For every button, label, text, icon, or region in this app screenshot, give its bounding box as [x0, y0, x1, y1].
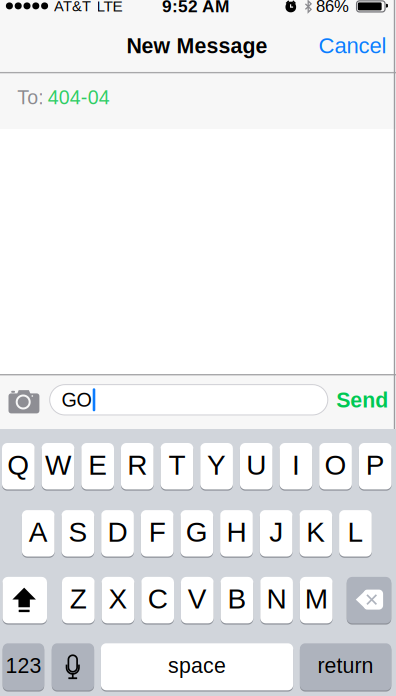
staticText: AT&T	[54, 0, 91, 14]
button[interactable]: F	[141, 509, 173, 557]
staticText: Cancel	[318, 33, 386, 58]
button[interactable]: P	[359, 442, 391, 490]
staticText: Y	[207, 449, 226, 481]
button[interactable]: T	[161, 442, 193, 490]
button[interactable]: Z	[62, 576, 95, 624]
staticText: X	[108, 583, 127, 615]
staticText: F	[149, 516, 166, 548]
button[interactable]: return	[300, 643, 391, 691]
staticText: W	[45, 449, 71, 481]
staticText: H	[226, 516, 246, 548]
button[interactable]: B	[221, 576, 253, 624]
staticText: Q	[7, 449, 29, 481]
staticText: To:	[17, 87, 43, 108]
button[interactable]: W	[42, 442, 74, 490]
staticText: E	[88, 449, 107, 481]
staticText: K	[306, 516, 325, 548]
staticText: C	[148, 583, 168, 615]
staticText: space	[168, 654, 226, 677]
button[interactable]: J	[260, 509, 292, 557]
button[interactable]: K	[299, 509, 332, 557]
staticText: P	[366, 449, 385, 481]
staticText: S	[68, 516, 87, 548]
staticText: Send	[336, 388, 388, 412]
staticText: L	[347, 516, 363, 548]
staticText: D	[107, 516, 127, 548]
staticText: J	[269, 516, 283, 548]
button[interactable]: A	[22, 509, 55, 557]
button[interactable]: Cancel	[306, 23, 396, 67]
staticText: 9:52 AM	[162, 0, 229, 16]
staticText: LTE	[96, 0, 122, 15]
staticText: N	[267, 583, 287, 615]
staticText: New Message	[126, 34, 267, 58]
button[interactable]: D	[101, 509, 134, 557]
button[interactable]: Delete	[347, 576, 391, 624]
staticText: I	[292, 449, 300, 481]
button[interactable]: O	[319, 442, 352, 490]
button[interactable]: Y	[200, 442, 233, 490]
button[interactable]: G	[180, 509, 213, 557]
staticText: 86%	[316, 0, 349, 16]
button[interactable]: X	[102, 576, 134, 624]
button[interactable]: H	[220, 509, 253, 557]
staticText: U	[246, 449, 266, 481]
button[interactable]: U	[240, 442, 273, 490]
staticText: Z	[70, 583, 87, 615]
button[interactable]: Send	[329, 379, 395, 421]
staticText: B	[227, 583, 246, 615]
staticText: 123	[5, 654, 41, 677]
staticText: R	[127, 449, 147, 481]
button[interactable]: I	[280, 442, 312, 490]
button[interactable]: space	[101, 643, 293, 691]
button[interactable]: E	[81, 442, 114, 490]
button[interactable]: V	[181, 576, 214, 624]
button[interactable]: M	[300, 576, 333, 624]
staticText: G	[186, 516, 208, 548]
staticText: return	[318, 654, 374, 677]
button[interactable]: R	[121, 442, 154, 490]
button[interactable]: 123	[3, 643, 44, 691]
button[interactable]: N	[260, 576, 293, 624]
button[interactable]: L	[339, 509, 372, 557]
button[interactable]: C	[141, 576, 174, 624]
button[interactable]: Q	[2, 442, 35, 490]
staticText: T	[168, 449, 185, 481]
staticText: V	[188, 583, 207, 615]
button[interactable]: Shift	[2, 576, 47, 624]
button[interactable]: S	[62, 509, 94, 557]
staticText: O	[325, 449, 347, 481]
staticText: M	[305, 583, 328, 615]
staticText: A	[29, 516, 48, 548]
button[interactable]: Dictation	[52, 643, 94, 691]
staticText: 404-04	[48, 87, 110, 108]
staticText: GO	[61, 389, 91, 411]
button[interactable]: Camera	[2, 379, 46, 423]
